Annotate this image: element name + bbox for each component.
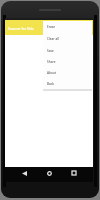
staticText: Save — [47, 49, 54, 53]
staticText: Share — [47, 60, 56, 64]
staticText: Scanner for Kids — [8, 26, 34, 30]
staticText: Back — [47, 82, 55, 86]
button[interactable]: Clear all — [43, 33, 92, 45]
button[interactable]: Share — [43, 56, 92, 67]
button[interactable]: Home — [43, 167, 55, 179]
button[interactable]: Erase — [43, 21, 92, 33]
button[interactable]: Save — [43, 45, 92, 56]
staticText: Erase — [47, 25, 56, 29]
staticText: Clear all — [47, 37, 59, 41]
staticText: About — [47, 71, 56, 75]
button[interactable]: About — [43, 67, 92, 78]
button[interactable]: Recent apps — [68, 167, 80, 179]
button[interactable]: Back — [43, 78, 92, 89]
button[interactable]: Scanner for Kids — [5, 20, 93, 35]
button[interactable]: Back — [18, 167, 30, 179]
